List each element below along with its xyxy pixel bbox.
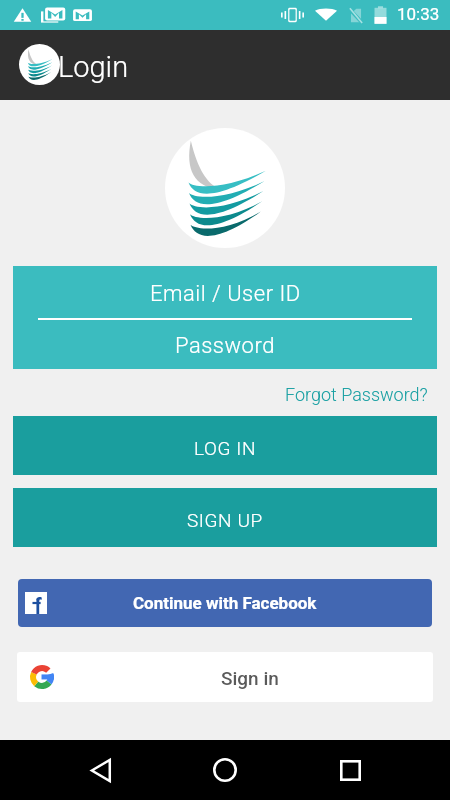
button[interactable]: Password: [13, 319, 437, 369]
staticText: Password: [175, 333, 275, 359]
staticText: LOG IN: [194, 437, 257, 459]
staticText: Login: [58, 50, 129, 84]
button[interactable]: Forgot Password?: [285, 381, 428, 402]
button[interactable]: SIGN UP: [13, 488, 437, 547]
button[interactable]: Email / User ID: [13, 266, 437, 317]
staticText: Forgot Password?: [285, 384, 428, 405]
button[interactable]: Recent apps: [326, 746, 374, 794]
button[interactable]: Continue with Facebook: [18, 579, 432, 627]
button[interactable]: Back: [77, 746, 125, 794]
staticText: SIGN UP: [187, 509, 263, 531]
button[interactable]: Sign in: [17, 652, 433, 702]
button[interactable]: LOG IN: [13, 416, 437, 475]
staticText: Email / User ID: [150, 281, 301, 307]
staticText: Sign in: [221, 667, 279, 689]
button[interactable]: Home: [201, 746, 249, 794]
staticText: Continue with Facebook: [133, 593, 317, 613]
staticText: 10:33: [397, 4, 440, 24]
